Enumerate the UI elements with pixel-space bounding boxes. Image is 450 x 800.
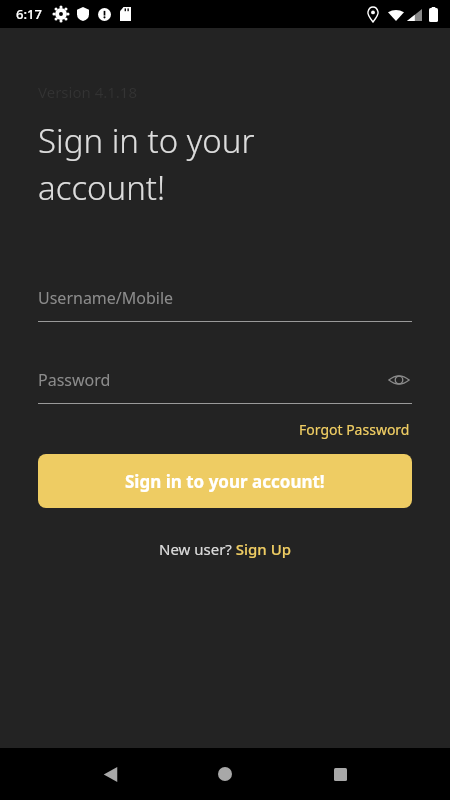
button[interactable]: New user? Sign Up [155, 535, 296, 563]
staticText: 6:17 [16, 5, 42, 23]
staticText: Sign in to your account! [38, 118, 390, 210]
button[interactable]: Sign in to your account! [38, 454, 412, 508]
staticText: Username/Mobile [38, 287, 174, 309]
button[interactable]: Home [203, 752, 247, 796]
button[interactable]: Back [88, 752, 132, 796]
button[interactable]: Show password [386, 367, 412, 393]
button[interactable]: Forgot Password [297, 418, 412, 441]
button[interactable]: Recent apps [318, 752, 362, 796]
staticText: Password [38, 369, 111, 391]
staticText: New user? Sign Up [159, 539, 292, 559]
staticText: Sign in to your account! [125, 470, 325, 493]
staticText: Version 4.1.18 [38, 82, 138, 102]
